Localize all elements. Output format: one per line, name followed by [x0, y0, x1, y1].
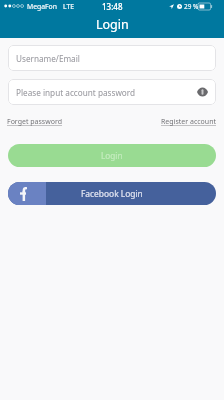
staticText: 29 % — [184, 2, 199, 11]
staticText: Username/Email — [16, 53, 80, 64]
staticText: Login — [101, 150, 123, 161]
staticText: Please input account password — [16, 87, 136, 98]
button[interactable]: Register account — [161, 117, 217, 127]
button[interactable]: Please input account password — [8, 79, 216, 105]
staticText: LTE — [63, 2, 74, 11]
button[interactable]: Forget password — [7, 117, 63, 127]
staticText: Login — [96, 16, 129, 33]
button[interactable]: Login — [8, 144, 216, 167]
staticText: Facebook Login — [81, 188, 143, 199]
staticText: 13:48 — [102, 1, 123, 12]
button[interactable]: Facebook Login — [8, 182, 216, 205]
staticText: MegaFon — [27, 2, 57, 11]
button[interactable]: Show password — [195, 84, 210, 99]
button[interactable]: Username/Email — [8, 45, 216, 71]
